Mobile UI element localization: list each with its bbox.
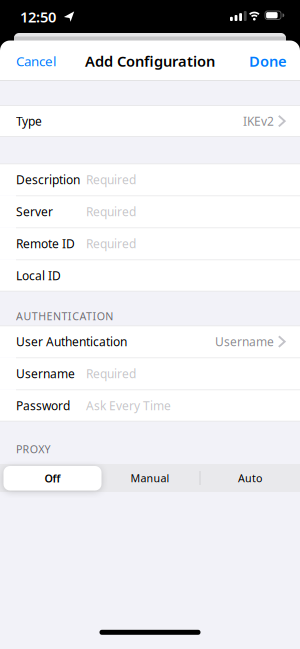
staticText: Password bbox=[16, 397, 70, 413]
staticText: Required bbox=[86, 235, 136, 251]
staticText: Done bbox=[249, 51, 287, 71]
staticText: Type bbox=[16, 113, 42, 129]
button[interactable]: Remote ID bbox=[0, 227, 300, 259]
button[interactable]: Manual bbox=[100, 464, 200, 492]
button[interactable]: Type bbox=[0, 105, 300, 137]
staticText: Server bbox=[16, 203, 53, 219]
button[interactable]: Cancel bbox=[0, 41, 56, 81]
staticText: Required bbox=[86, 203, 136, 219]
staticText: Manual bbox=[130, 471, 169, 485]
staticText: Username bbox=[215, 333, 274, 349]
staticText: Auto bbox=[238, 471, 262, 485]
button[interactable]: Password bbox=[0, 389, 300, 421]
staticText: AUTHENTICATION bbox=[16, 309, 113, 323]
button[interactable]: Auto bbox=[200, 464, 300, 492]
staticText: User Authentication bbox=[16, 333, 127, 349]
button[interactable]: Off bbox=[3, 466, 101, 490]
staticText: Description bbox=[16, 171, 80, 187]
staticText: Required bbox=[86, 365, 136, 381]
button[interactable]: Description bbox=[0, 163, 300, 195]
staticText: IKEv2 bbox=[243, 113, 274, 129]
button[interactable]: User Authentication bbox=[0, 325, 300, 357]
staticText: Required bbox=[86, 171, 136, 187]
staticText: Add Configuration bbox=[85, 51, 215, 71]
button[interactable]: Done bbox=[249, 41, 300, 81]
staticText: Off bbox=[44, 471, 60, 485]
staticText: PROXY bbox=[16, 442, 51, 456]
staticText: Remote ID bbox=[16, 235, 75, 251]
staticText: 12:50 bbox=[20, 7, 56, 26]
button[interactable]: Local ID bbox=[0, 259, 300, 291]
staticText: Username bbox=[16, 365, 75, 381]
staticText: Local ID bbox=[16, 267, 61, 283]
staticText: Cancel bbox=[16, 52, 56, 70]
staticText: Ask Every Time bbox=[86, 397, 171, 413]
button[interactable]: Username bbox=[0, 357, 300, 389]
button[interactable]: Server bbox=[0, 195, 300, 227]
